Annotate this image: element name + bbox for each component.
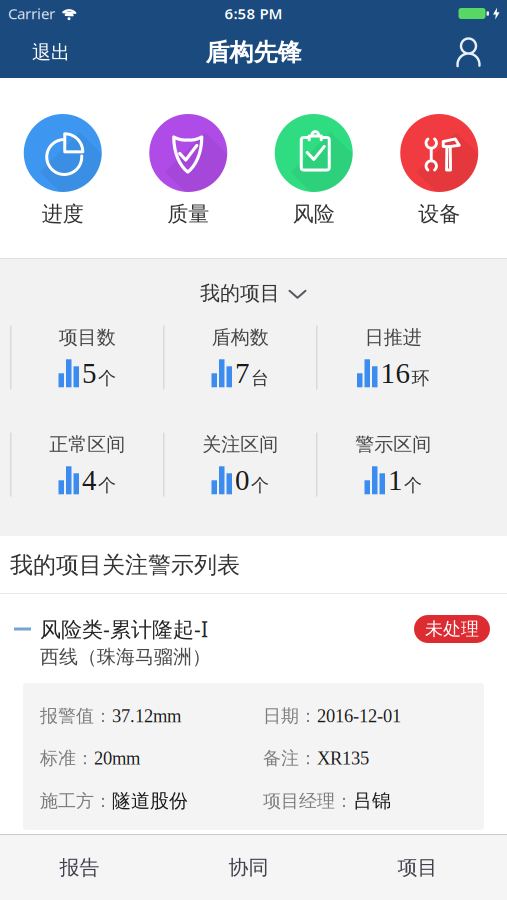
staticText: 16 [380,357,410,389]
staticText: 西线（珠海马骝洲） [40,645,211,669]
staticText: 风险类-累计隆起-I [40,615,208,643]
staticText: 0 [235,464,250,496]
staticText: 退出 [32,41,70,64]
button[interactable]: 报告 [0,855,164,880]
staticText: 备注： [263,747,317,769]
staticText: 吕锦 [353,789,391,812]
button[interactable]: 我的账户 [455,37,482,67]
staticText: 协同 [228,855,268,880]
button[interactable]: 设备 [376,114,502,227]
button[interactable]: 未处理 [414,615,490,643]
staticText: 标准： [40,747,94,769]
staticText: 日期： [263,705,317,727]
staticText: 20mm [94,748,140,768]
staticText: 隧道股份 [112,789,188,812]
button[interactable]: 风险 [251,114,376,227]
button[interactable]: 退出 [32,41,70,64]
staticText: 风险 [293,201,335,227]
staticText: 7 [235,357,250,389]
staticText: 未处理 [425,618,479,640]
staticText: 质量 [167,201,209,227]
staticText: 6:58 PM [224,3,282,23]
button[interactable]: 项目 [333,855,502,880]
staticText: 个 [404,474,422,496]
staticText: 我的项目 [200,281,280,306]
staticText: 我的项目关注警示列表 [10,551,240,579]
staticText: XR135 [317,748,369,768]
staticText: 日推进 [365,326,422,349]
staticText: 5 [82,357,97,389]
staticText: Carrier [8,3,55,23]
staticText: 项目 [397,855,437,880]
staticText: 关注区间 [202,433,278,456]
staticText: 正常区间 [49,433,125,456]
staticText: 盾构数 [212,326,269,349]
button[interactable]: 风险类-累计隆起-I [0,594,507,830]
button[interactable]: 我的项目 [200,259,307,306]
staticText: 37.12mm [112,706,181,726]
staticText: 进度 [42,201,84,227]
button[interactable]: 协同 [164,855,333,880]
staticText: 盾构先锋 [205,38,301,67]
staticText: 项目经理： [263,790,353,812]
staticText: 个 [98,367,116,389]
staticText: 台 [251,367,269,389]
staticText: 报警值： [40,705,112,727]
staticText: 4 [82,464,97,496]
staticText: 个 [98,474,116,496]
staticText: 1 [388,464,403,496]
staticText: 环 [411,367,429,389]
staticText: 警示区间 [355,433,431,456]
staticText: 2016-12-01 [317,706,401,726]
staticText: 报告 [59,855,99,880]
staticText: 设备 [418,201,460,227]
button[interactable]: 质量 [125,114,251,227]
button[interactable]: 进度 [0,114,125,227]
staticText: 施工方： [40,790,112,812]
staticText: 个 [251,474,269,496]
staticText: 项目数 [59,326,116,349]
